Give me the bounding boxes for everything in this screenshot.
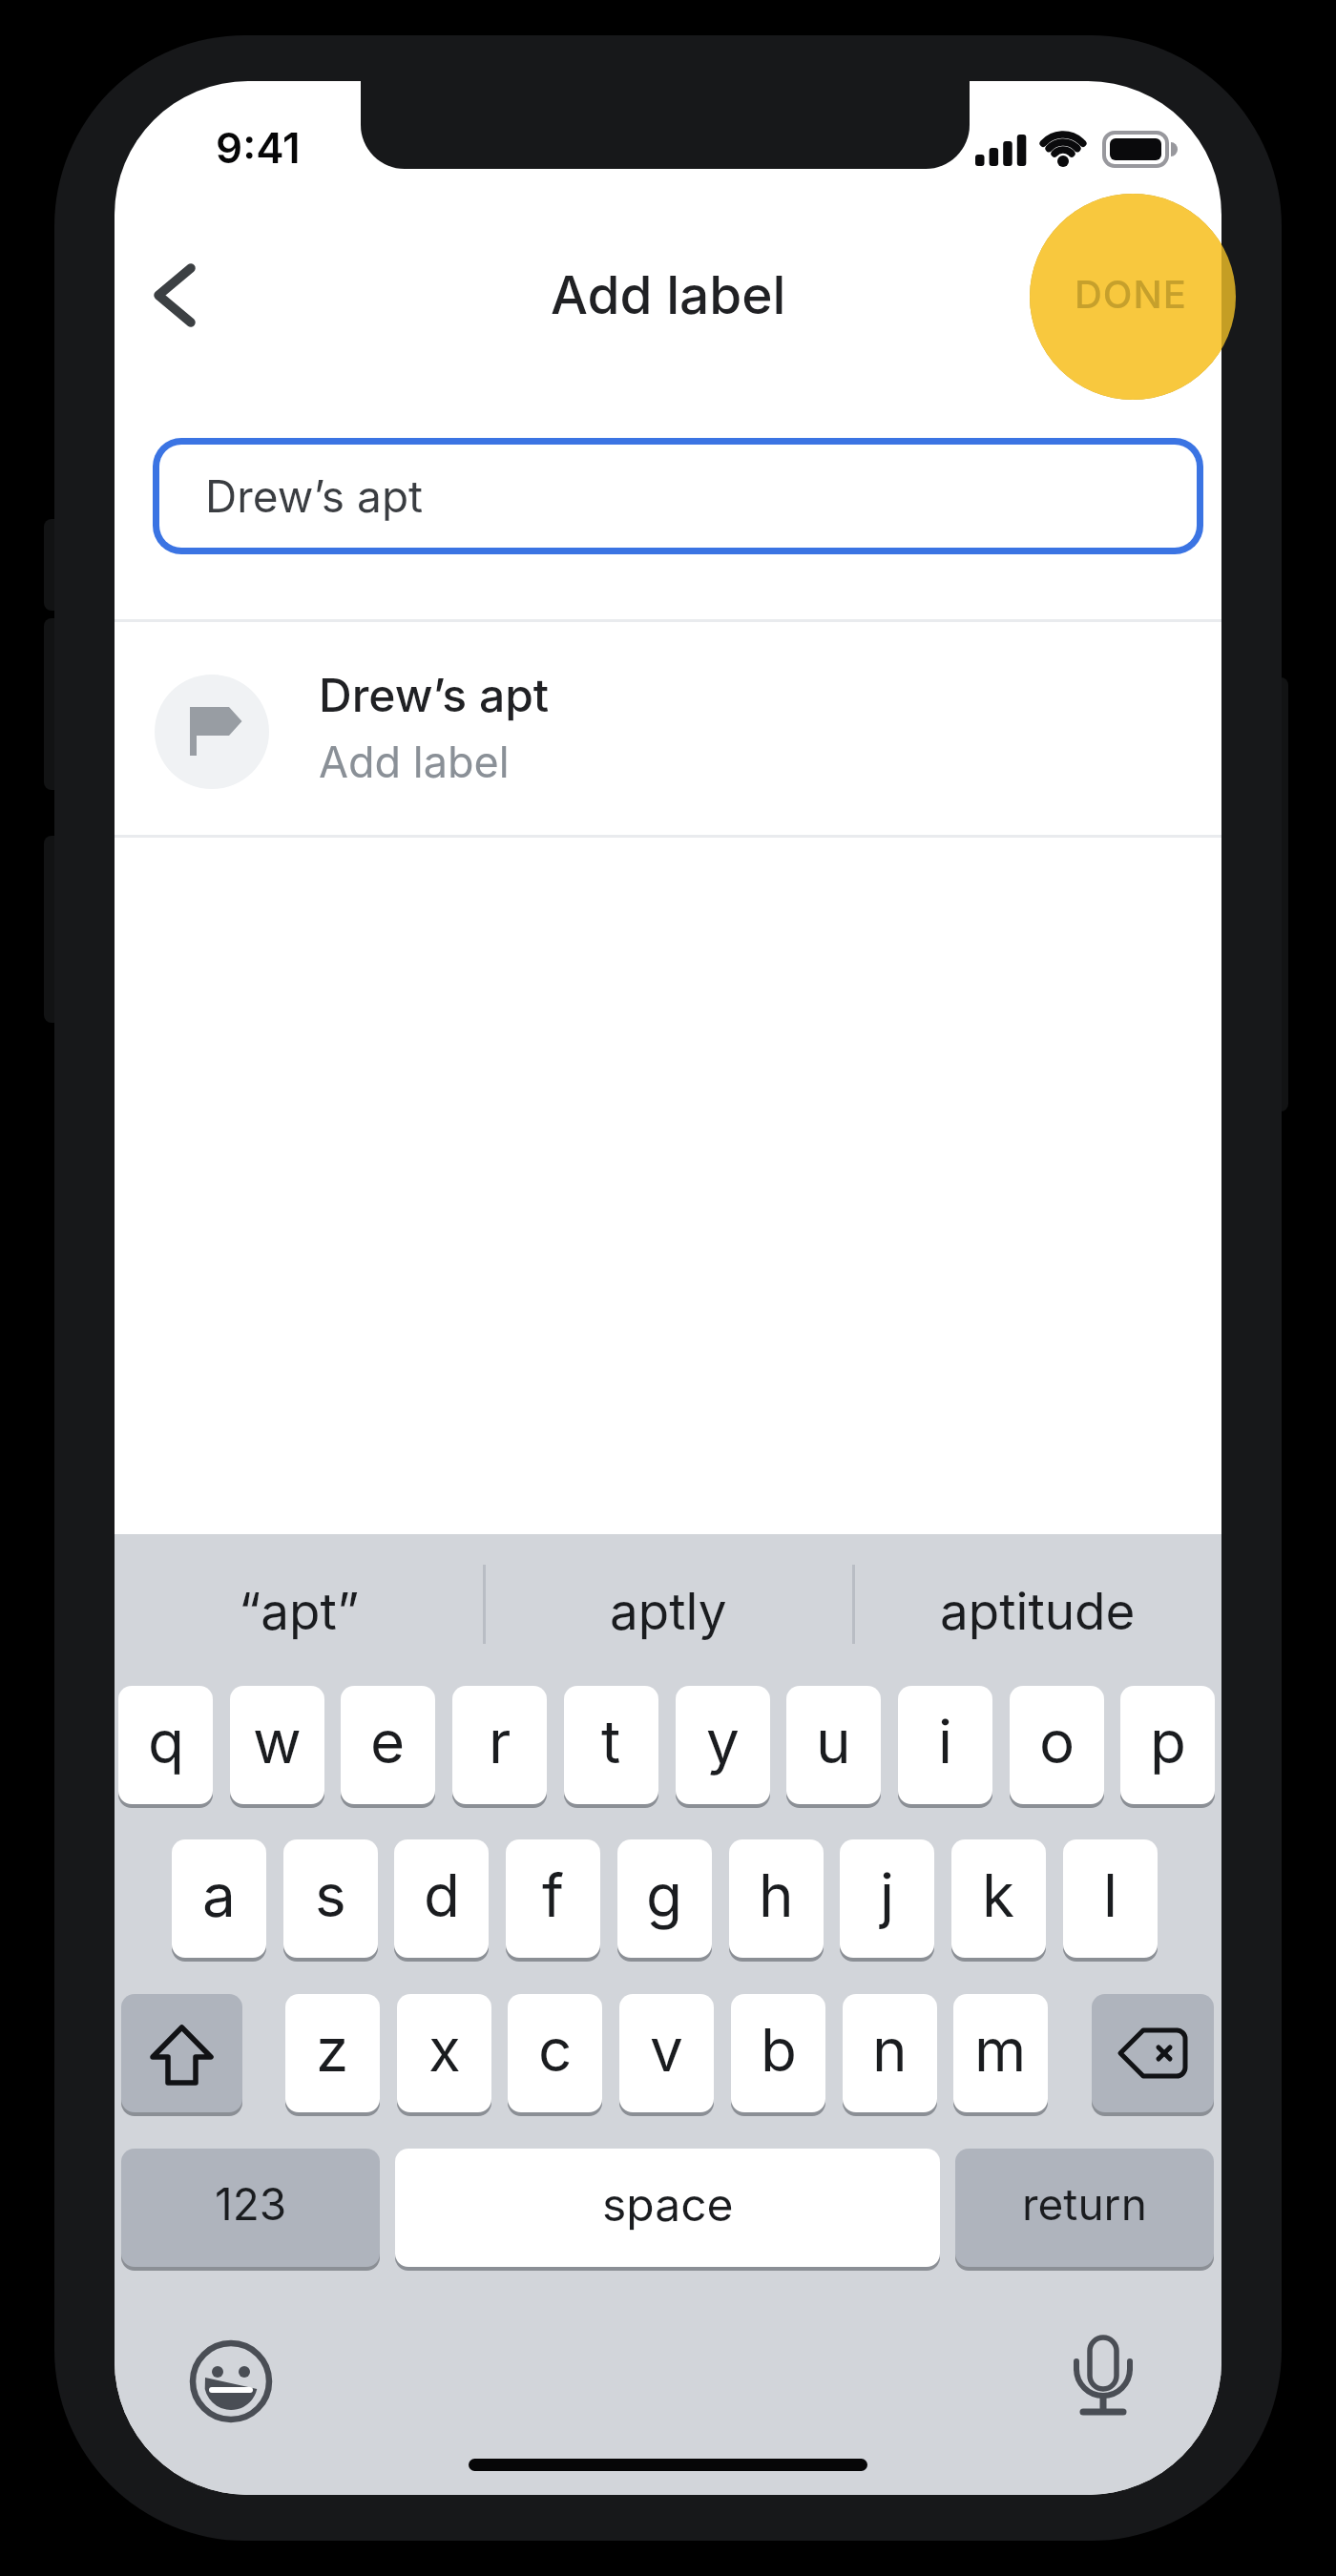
button[interactable]: return — [955, 2149, 1214, 2267]
staticText: return — [1022, 2177, 1147, 2231]
button[interactable]: k — [951, 1839, 1046, 1958]
staticText: “apt” — [239, 1581, 360, 1642]
staticText: p — [1150, 1706, 1186, 1777]
staticText: z — [316, 2014, 349, 2086]
staticText: aptly — [610, 1581, 727, 1642]
staticText: o — [1039, 1706, 1075, 1777]
staticText: w — [253, 1706, 302, 1777]
button[interactable]: i — [898, 1686, 992, 1804]
staticText: f — [542, 1859, 564, 1931]
button[interactable] — [174, 2324, 288, 2439]
staticText: e — [370, 1706, 406, 1777]
staticText: j — [880, 1859, 895, 1931]
staticText: m — [974, 2014, 1027, 2086]
button[interactable] — [115, 622, 1221, 835]
button[interactable]: z — [285, 1994, 380, 2112]
button[interactable]: a — [172, 1839, 266, 1958]
staticText: aptitude — [940, 1581, 1136, 1642]
button[interactable]: f — [506, 1839, 600, 1958]
button[interactable]: m — [953, 1994, 1048, 2112]
button[interactable] — [1046, 2324, 1160, 2439]
staticText: b — [761, 2014, 797, 2086]
button[interactable]: b — [731, 1994, 825, 2112]
button[interactable]: c — [508, 1994, 602, 2112]
staticText: c — [538, 2014, 573, 2086]
button[interactable]: t — [564, 1686, 658, 1804]
staticText: 123 — [215, 2177, 287, 2231]
button[interactable] — [153, 438, 1203, 554]
button[interactable]: n — [843, 1994, 937, 2112]
staticText: r — [489, 1706, 511, 1777]
staticText: v — [650, 2014, 683, 2086]
staticText: h — [759, 1859, 794, 1931]
button[interactable] — [1030, 194, 1221, 400]
button[interactable]: l — [1063, 1839, 1158, 1958]
staticText: 9:41 — [216, 122, 301, 173]
staticText: i — [938, 1706, 953, 1777]
staticText: Drew’s apt — [319, 667, 550, 722]
staticText: space — [602, 2176, 734, 2232]
staticText: DONE — [1075, 271, 1187, 317]
button[interactable]: g — [617, 1839, 712, 1958]
button[interactable]: x — [397, 1994, 491, 2112]
button[interactable]: o — [1010, 1686, 1104, 1804]
staticText: t — [601, 1706, 621, 1777]
button[interactable]: q — [118, 1686, 213, 1804]
button[interactable] — [1092, 1994, 1214, 2112]
button[interactable]: h — [729, 1839, 824, 1958]
staticText: q — [148, 1706, 184, 1777]
button[interactable]: d — [394, 1839, 489, 1958]
button[interactable]: w — [230, 1686, 324, 1804]
staticText: s — [315, 1859, 346, 1931]
button[interactable]: r — [452, 1686, 547, 1804]
staticText: u — [816, 1706, 851, 1777]
staticText: g — [646, 1859, 683, 1931]
button[interactable]: p — [1120, 1686, 1215, 1804]
staticText: k — [982, 1859, 1015, 1931]
staticText: x — [428, 2014, 461, 2086]
button[interactable] — [121, 1994, 242, 2112]
button[interactable]: e — [341, 1686, 435, 1804]
staticText: y — [706, 1706, 740, 1777]
staticText: d — [424, 1859, 460, 1931]
button[interactable]: v — [619, 1994, 714, 2112]
button[interactable]: y — [676, 1686, 770, 1804]
button[interactable]: u — [786, 1686, 881, 1804]
staticText: Add label — [319, 736, 510, 787]
button[interactable]: 123 — [121, 2149, 380, 2267]
staticText: l — [1103, 1859, 1118, 1931]
button[interactable] — [484, 1534, 853, 1677]
staticText: a — [202, 1859, 236, 1931]
staticText: Drew’s apt — [205, 469, 424, 523]
staticText: Add label — [551, 263, 786, 327]
button[interactable] — [134, 253, 239, 358]
staticText: n — [872, 2014, 908, 2086]
button[interactable] — [115, 1534, 484, 1677]
button[interactable]: s — [283, 1839, 378, 1958]
button[interactable]: space — [395, 2149, 940, 2267]
button[interactable]: j — [840, 1839, 934, 1958]
button[interactable] — [853, 1534, 1221, 1677]
